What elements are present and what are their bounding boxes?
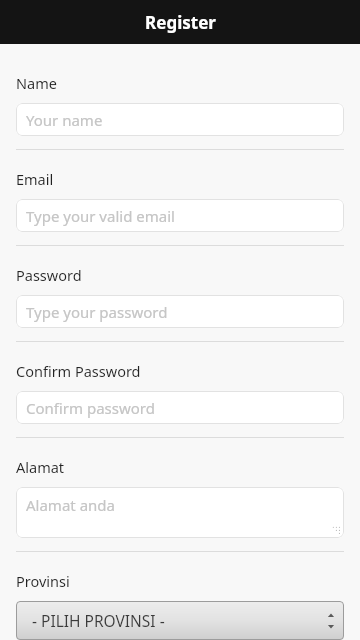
staticText: Confirm Password xyxy=(16,361,141,381)
button[interactable]: Alamat anda xyxy=(16,487,344,538)
staticText: Email xyxy=(16,169,54,189)
staticText: Provinsi xyxy=(16,571,70,591)
button[interactable]: - PILIH PROVINSI - xyxy=(16,601,344,640)
staticText: Name xyxy=(16,73,57,93)
staticText: Type your valid email xyxy=(26,206,175,226)
button[interactable]: Confirm password xyxy=(16,391,344,424)
button[interactable]: Your name xyxy=(16,103,344,136)
staticText: Password xyxy=(16,265,82,285)
staticText: Alamat anda xyxy=(26,495,115,515)
button[interactable]: Type your valid email xyxy=(16,199,344,232)
button[interactable]: Type your password xyxy=(16,295,344,328)
staticText: Type your password xyxy=(26,302,168,322)
staticText: Your name xyxy=(26,110,103,130)
staticText: Alamat xyxy=(16,457,65,477)
staticText: Register xyxy=(145,11,216,34)
staticText: - PILIH PROVINSI - xyxy=(32,610,165,631)
staticText: Confirm password xyxy=(26,398,155,418)
